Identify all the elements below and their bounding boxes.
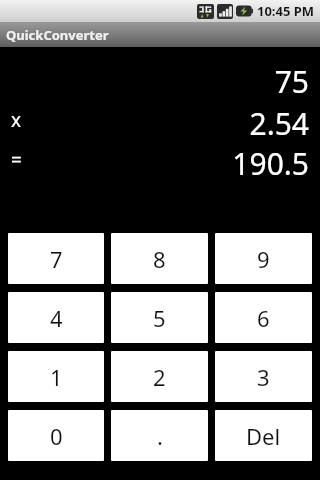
staticText: 75 xyxy=(274,61,309,95)
staticText: 3 xyxy=(257,362,270,392)
staticText: 5 xyxy=(153,303,166,333)
staticText: 6 xyxy=(257,303,270,333)
button[interactable]: 2 xyxy=(111,351,208,402)
button[interactable]: . xyxy=(111,410,208,461)
staticText: 190.5 xyxy=(232,143,309,177)
staticText: Del xyxy=(246,421,281,451)
staticText: x xyxy=(11,107,22,133)
staticText: QuickConverter xyxy=(6,26,109,44)
button[interactable]: 7 xyxy=(8,233,104,284)
button[interactable]: Del xyxy=(215,410,312,461)
button[interactable]: 9 xyxy=(215,233,312,284)
button[interactable]: 8 xyxy=(111,233,208,284)
staticText: 2 xyxy=(153,362,166,392)
staticText: . xyxy=(157,421,163,451)
staticText: 10:45 PM xyxy=(257,2,315,20)
button[interactable]: 0 xyxy=(8,410,104,461)
button[interactable]: 1 xyxy=(8,351,104,402)
staticText: 0 xyxy=(50,421,63,451)
button[interactable]: 3 xyxy=(215,351,312,402)
button[interactable]: 4 xyxy=(8,292,104,343)
staticText: 1 xyxy=(50,362,63,392)
button[interactable]: 5 xyxy=(111,292,208,343)
button[interactable]: 6 xyxy=(215,292,312,343)
staticText: = xyxy=(11,147,22,173)
staticText: 4 xyxy=(50,303,63,333)
staticText: 7 xyxy=(50,244,63,274)
staticText: 8 xyxy=(153,244,166,274)
staticText: 2.54 xyxy=(249,103,309,137)
staticText: 9 xyxy=(257,244,270,274)
